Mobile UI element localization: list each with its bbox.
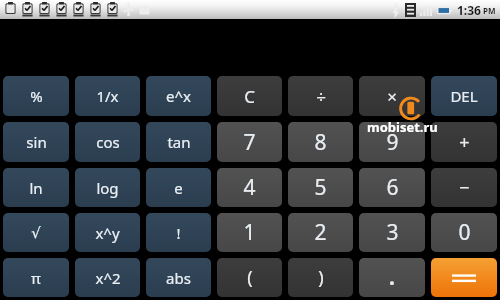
staticText: √ — [31, 224, 41, 241]
staticText: + — [459, 130, 470, 155]
button[interactable]: % — [3, 76, 69, 116]
button[interactable]: ! — [146, 213, 211, 252]
staticText: 4 — [243, 173, 256, 202]
button[interactable]: ( — [217, 258, 282, 297]
staticText: tan — [167, 132, 191, 152]
staticText: abs — [166, 268, 191, 288]
staticText: cos — [96, 132, 120, 152]
button[interactable]: log — [75, 168, 140, 207]
staticText: 0 — [458, 218, 471, 247]
button[interactable]: × — [359, 76, 425, 116]
staticText: 9 — [386, 128, 399, 157]
staticText: 1 — [243, 218, 256, 247]
staticText: . — [389, 263, 395, 292]
staticText: PM — [483, 5, 496, 16]
button[interactable]: ÷ — [288, 76, 353, 116]
staticText: × — [387, 85, 397, 108]
staticText: ! — [176, 223, 181, 243]
button[interactable]: π — [3, 258, 69, 297]
staticText: π — [31, 268, 41, 288]
button[interactable]: cos — [75, 122, 140, 162]
staticText: 7 — [243, 128, 256, 157]
staticText: DEL — [450, 86, 478, 106]
button[interactable]: 2 — [288, 213, 353, 252]
staticText: ÷ — [316, 85, 326, 108]
button[interactable]: . — [359, 258, 425, 297]
staticText: ) — [318, 265, 324, 290]
button[interactable]: ) — [288, 258, 353, 297]
button[interactable]: 1/x — [75, 76, 140, 116]
button[interactable]: x^2 — [75, 258, 140, 297]
button[interactable]: 4 — [217, 168, 282, 207]
staticText: sin — [26, 132, 47, 152]
button[interactable]: + — [431, 122, 497, 162]
button[interactable]: sin — [3, 122, 69, 162]
staticText: e — [174, 178, 183, 198]
staticText: log — [96, 178, 119, 198]
button[interactable]: e^x — [146, 76, 211, 116]
staticText: 1/x — [96, 86, 119, 106]
staticText: 8 — [314, 128, 327, 157]
staticText: 2 — [314, 218, 327, 247]
button[interactable]: 1 — [217, 213, 282, 252]
staticText: mobiset.ru — [367, 118, 438, 136]
staticText: ( — [247, 265, 253, 290]
button[interactable]: x^y — [75, 213, 140, 252]
button[interactable]: 3 — [359, 213, 425, 252]
button[interactable]: Equals — [431, 258, 497, 297]
button[interactable]: 8 — [288, 122, 353, 162]
button[interactable]: 5 — [288, 168, 353, 207]
staticText: x^y — [95, 223, 120, 243]
button[interactable]: − — [431, 168, 497, 207]
staticText: ln — [29, 178, 43, 198]
button[interactable]: 6 — [359, 168, 425, 207]
staticText: C — [244, 85, 255, 108]
staticText: 5 — [314, 173, 327, 202]
button[interactable]: DEL — [431, 76, 497, 116]
staticText: 1:36 — [457, 2, 481, 18]
staticText: 3 — [386, 218, 399, 247]
staticText: x^2 — [95, 268, 121, 288]
button[interactable]: abs — [146, 258, 211, 297]
button[interactable]: tan — [146, 122, 211, 162]
staticText: − — [459, 175, 470, 200]
button[interactable]: 7 — [217, 122, 282, 162]
button[interactable]: 9 — [359, 122, 425, 162]
button[interactable]: 0 — [431, 213, 497, 252]
staticText: 6 — [386, 173, 399, 202]
button[interactable]: e — [146, 168, 211, 207]
staticText: % — [30, 86, 43, 106]
button[interactable]: C — [217, 76, 282, 116]
staticText: e^x — [166, 86, 191, 106]
button[interactable]: ln — [3, 168, 69, 207]
button[interactable]: √ — [3, 213, 69, 252]
